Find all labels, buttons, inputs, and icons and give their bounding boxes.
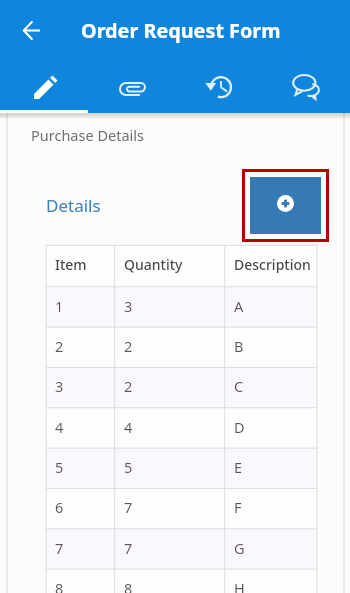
staticText: 2	[124, 376, 133, 396]
staticText: 4	[55, 417, 64, 437]
staticText: D	[234, 417, 245, 437]
staticText: 7	[55, 538, 64, 558]
staticText: Details	[46, 194, 101, 217]
staticText: Purchase Details	[31, 125, 144, 145]
button[interactable]: Edit	[0, 61, 87, 111]
staticText: 5	[124, 457, 133, 477]
button[interactable]: Attachments	[87, 61, 174, 111]
staticText: 1	[55, 296, 64, 316]
staticText: 3	[55, 376, 64, 396]
staticText: Item	[55, 255, 87, 274]
staticText: 7	[124, 497, 133, 517]
button[interactable]: Add item	[242, 169, 329, 242]
staticText: Order Request Form	[81, 17, 281, 44]
staticText: 8	[124, 578, 133, 593]
staticText: E	[234, 457, 243, 477]
staticText: 3	[124, 296, 133, 316]
staticText: F	[234, 497, 242, 517]
staticText: 2	[124, 336, 133, 356]
staticText: A	[234, 296, 244, 316]
staticText: 5	[55, 457, 64, 477]
staticText: 4	[124, 417, 133, 437]
button[interactable]: History	[174, 61, 262, 111]
staticText: G	[234, 538, 245, 558]
staticText: 6	[55, 497, 64, 517]
staticText: Description	[234, 255, 311, 274]
staticText: 2	[55, 336, 64, 356]
staticText: H	[234, 578, 245, 593]
staticText: 7	[124, 538, 133, 558]
staticText: 8	[55, 578, 64, 593]
button[interactable]: Comments	[262, 61, 350, 111]
staticText: C	[234, 376, 244, 396]
button[interactable]: Back	[0, 0, 63, 60]
staticText: Quantity	[124, 255, 183, 274]
staticText: B	[234, 336, 244, 356]
